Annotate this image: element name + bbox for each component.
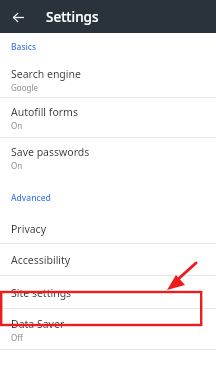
staticText: Accessibility: [11, 253, 71, 267]
staticText: Site settings: [11, 286, 72, 300]
staticText: On: [11, 160, 23, 171]
staticText: Search engine: [11, 67, 81, 81]
button[interactable]: Search engine: [0, 62, 216, 98]
staticText: Save passwords: [11, 145, 90, 159]
staticText: On: [11, 120, 23, 131]
staticText: Basics: [11, 41, 37, 53]
button[interactable]: Accessibility: [0, 244, 216, 276]
staticText: Privacy: [11, 222, 47, 236]
staticText: Advanced: [11, 192, 51, 204]
button[interactable]: Data Saver: [0, 309, 216, 350]
button[interactable]: Autofill forms: [0, 98, 216, 138]
staticText: Google: [11, 82, 38, 93]
staticText: Autofill forms: [11, 105, 78, 119]
button[interactable]: Privacy: [0, 213, 216, 244]
button[interactable]: Save passwords: [0, 138, 216, 178]
staticText: Settings: [46, 8, 99, 26]
staticText: Data Saver: [11, 317, 65, 331]
button[interactable]: Back: [7, 6, 29, 28]
button[interactable]: Site settings: [0, 276, 216, 309]
staticText: Off: [11, 332, 23, 343]
